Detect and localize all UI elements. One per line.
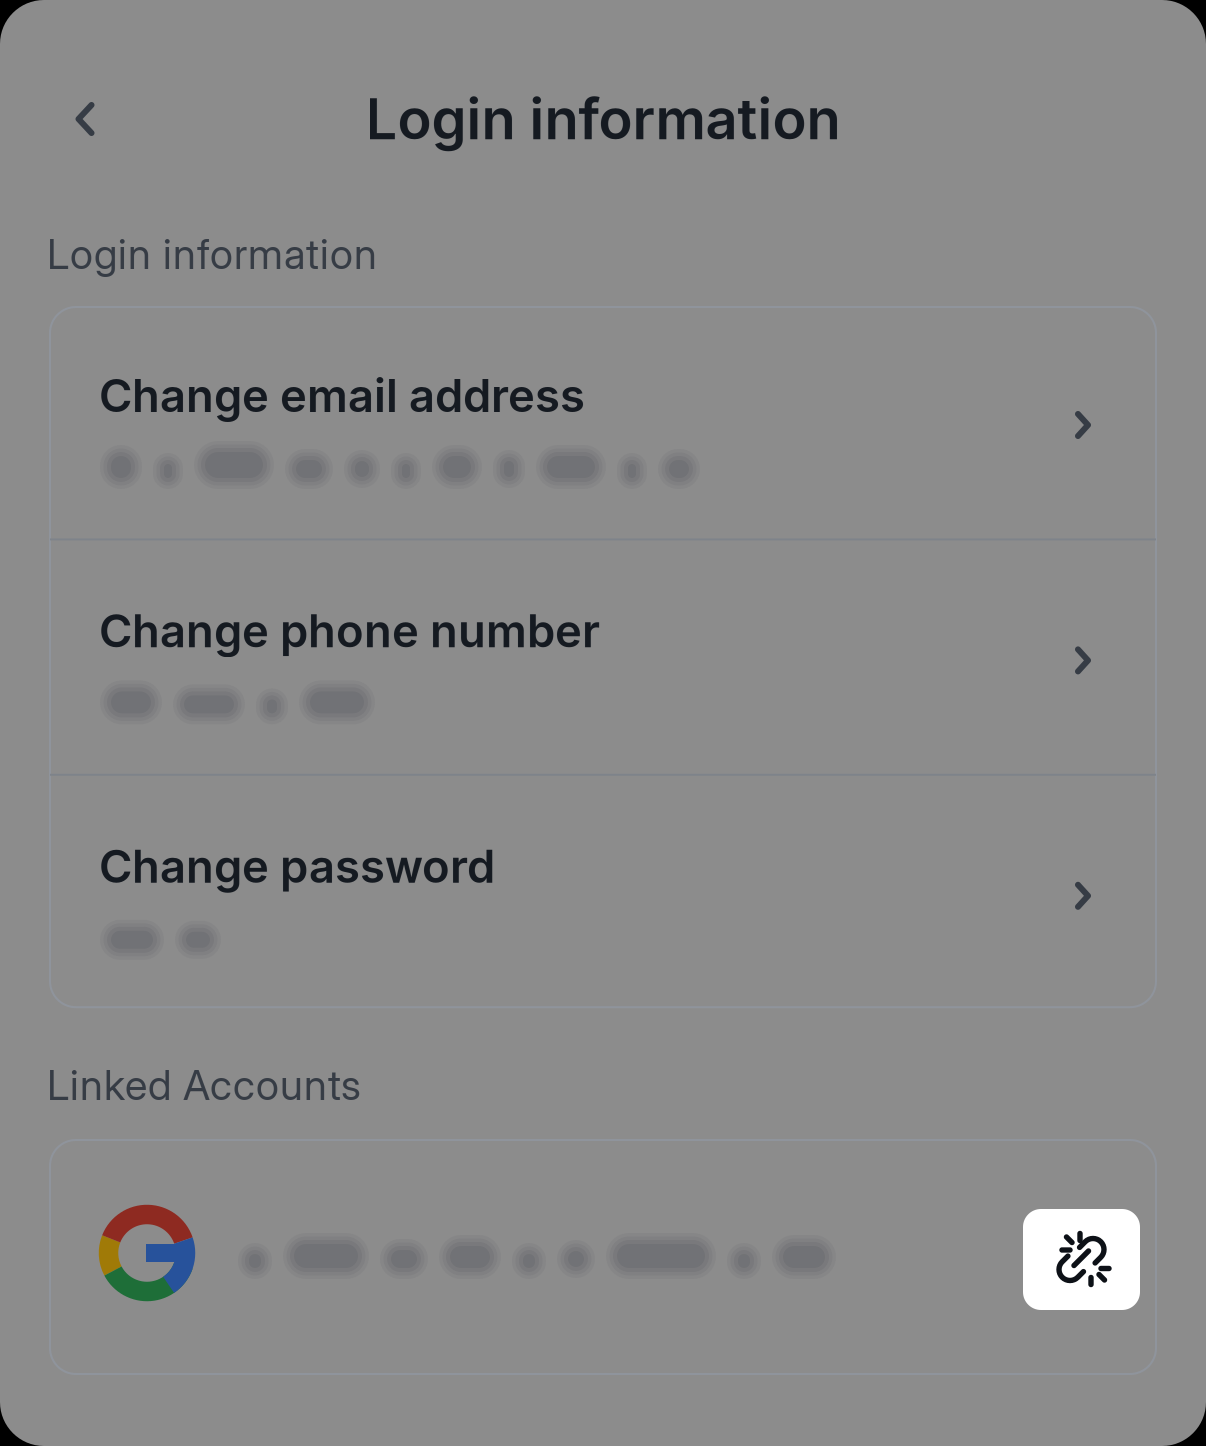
button[interactable]: Change password [50,776,1156,1009]
staticText: Change email address [99,368,585,423]
button[interactable]: Back [47,81,123,157]
staticText: Change password [99,839,495,894]
button[interactable]: Unlink Google account [1023,1209,1140,1310]
staticText: Login information [47,229,377,279]
staticText: Login information [365,85,840,153]
button[interactable]: Change email address [50,305,1156,538]
staticText: Linked Accounts [47,1060,361,1110]
staticText: Change phone number [99,603,600,658]
button[interactable]: Change phone number [50,540,1156,774]
